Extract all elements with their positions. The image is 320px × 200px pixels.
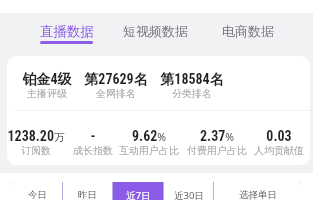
button[interactable]: 短视频数据: [123, 23, 188, 39]
staticText: 主播评级: [7, 87, 107, 100]
button[interactable]: 电商数据: [222, 23, 274, 39]
staticText: 短视频数据: [123, 23, 188, 39]
button[interactable]: 9.62%: [89, 128, 209, 144]
button[interactable]: 近30日: [164, 182, 213, 200]
button[interactable]: 2.37%: [157, 128, 277, 144]
button[interactable]: 0.03: [219, 128, 310, 144]
button[interactable]: 近7日: [113, 182, 163, 200]
button[interactable]: 直播数据: [40, 23, 94, 40]
staticText: 成长指数: [33, 144, 153, 157]
staticText: 订阅数: [7, 144, 96, 157]
staticText: 近30日: [174, 189, 204, 200]
staticText: 全网排名: [56, 87, 176, 100]
staticText: 今日: [28, 189, 47, 200]
staticText: 分类排名: [132, 87, 252, 100]
staticText: 直播数据: [40, 23, 94, 40]
button[interactable]: 第18584名: [132, 71, 252, 89]
staticText: 选择单日: [239, 189, 277, 200]
button[interactable]: 铂金4级: [7, 71, 107, 89]
button[interactable]: 昨日: [63, 182, 112, 200]
button[interactable]: 今日: [12, 182, 62, 200]
staticText: 近7日: [126, 189, 151, 200]
button[interactable]: -: [33, 128, 153, 144]
staticText: 互动用户占比: [89, 144, 209, 157]
staticText: 付费用户占比: [157, 144, 277, 157]
button[interactable]: 第27629名: [56, 71, 176, 89]
staticText: 人均贡献值: [219, 144, 310, 157]
button[interactable]: 1238.20万: [7, 128, 96, 144]
staticText: 电商数据: [222, 23, 274, 39]
staticText: 昨日: [78, 189, 97, 200]
button[interactable]: 选择单日: [214, 182, 301, 200]
